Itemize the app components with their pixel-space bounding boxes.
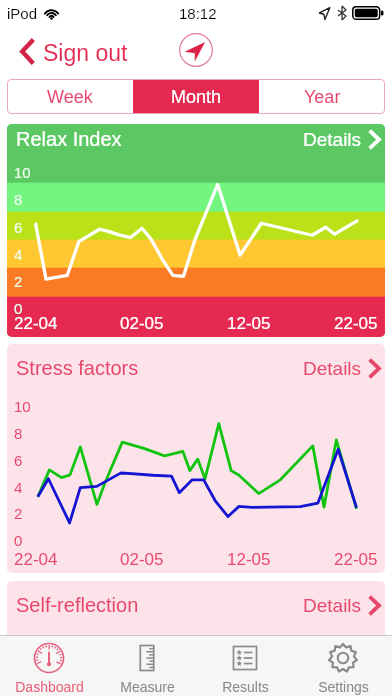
- staticText: 10: [14, 398, 31, 415]
- staticText: Details: [303, 129, 362, 150]
- staticText: 8: [14, 191, 23, 208]
- staticText: Year: [304, 87, 341, 107]
- staticText: Relax Index: [16, 128, 122, 150]
- staticText: 0: [14, 532, 23, 549]
- staticText: Week: [47, 87, 93, 107]
- button[interactable]: Dashboard: [0, 636, 98, 696]
- staticText: 2: [14, 273, 23, 290]
- staticText: Measure: [120, 679, 175, 695]
- staticText: 02-05: [120, 314, 164, 333]
- staticText: 4: [14, 246, 23, 263]
- staticText: 12-05: [227, 314, 271, 333]
- button[interactable]: Week: [7, 79, 133, 114]
- button[interactable]: Measure: [98, 636, 196, 696]
- staticText: 4: [14, 479, 23, 496]
- button[interactable]: Details: [303, 358, 381, 379]
- staticText: 12-05: [227, 550, 271, 569]
- staticText: Details: [303, 358, 362, 379]
- staticText: Settings: [318, 679, 369, 695]
- staticText: iPod: [7, 5, 38, 22]
- staticText: Details: [303, 595, 362, 616]
- staticText: Dashboard: [15, 679, 84, 695]
- staticText: Sign out: [43, 40, 128, 66]
- button[interactable]: Details: [303, 129, 381, 150]
- staticText: 22-05: [334, 550, 378, 569]
- staticText: 2: [14, 505, 23, 522]
- staticText: 22-04: [14, 550, 58, 569]
- button[interactable]: Settings: [294, 636, 392, 696]
- staticText: 10: [14, 164, 31, 181]
- button[interactable]: Year: [259, 79, 385, 114]
- staticText: Stress factors: [16, 357, 139, 379]
- button[interactable]: Month: [133, 79, 259, 114]
- button[interactable]: Sign out: [20, 35, 136, 71]
- button[interactable]: Navigate: [179, 33, 213, 67]
- staticText: 0: [14, 300, 23, 317]
- staticText: 02-05: [120, 550, 164, 569]
- staticText: Self-reflection: [16, 594, 139, 616]
- staticText: 6: [14, 219, 23, 236]
- staticText: Results: [222, 679, 269, 695]
- button[interactable]: Self-reflection: [7, 581, 385, 645]
- staticText: 18:12: [179, 5, 217, 22]
- button[interactable]: Results: [196, 636, 294, 696]
- staticText: 22-05: [334, 314, 378, 333]
- staticText: 22-04: [14, 314, 58, 333]
- staticText: 8: [14, 425, 23, 442]
- staticText: Month: [171, 87, 222, 107]
- staticText: 6: [14, 452, 23, 469]
